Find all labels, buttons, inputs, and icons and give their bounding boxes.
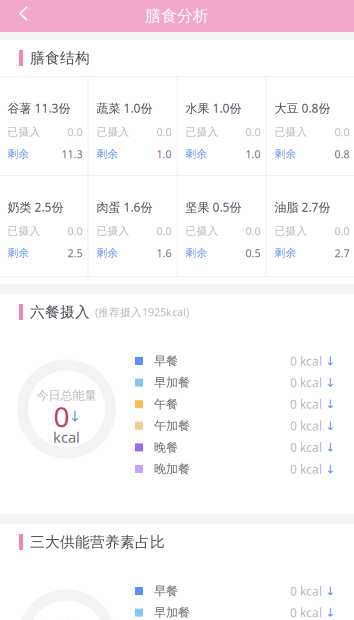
staticText: 奶类 2.5份 xyxy=(7,199,63,215)
staticText: 剩余 xyxy=(185,147,207,160)
staticText: 已摄入 xyxy=(274,125,307,138)
staticText: 已摄入 xyxy=(185,224,218,237)
staticText: 剩余 xyxy=(7,147,29,160)
staticText: 0 kcal xyxy=(290,418,322,434)
staticText: 0 kcal xyxy=(290,396,322,412)
staticText: 三大供能营养素占比 xyxy=(30,533,165,551)
button[interactable]: 返回 xyxy=(0,0,32,32)
staticText: 1.0 xyxy=(156,147,171,161)
staticText: 晚餐 xyxy=(154,440,178,455)
staticText: ↓ xyxy=(325,462,335,476)
staticText: 膳食分析 xyxy=(145,6,209,26)
staticText: 坚果 0.5份 xyxy=(185,199,241,215)
staticText: 0 kcal xyxy=(290,605,322,620)
staticText: 剩余 xyxy=(274,246,296,259)
staticText: ↓ xyxy=(68,408,80,425)
staticText: 早餐 xyxy=(154,584,178,598)
staticText: 剩余 xyxy=(7,246,29,259)
staticText: ↓ xyxy=(325,376,335,389)
staticText: 1.6 xyxy=(156,246,171,260)
staticText: 0.0 xyxy=(245,125,260,139)
staticText: 1.0 xyxy=(245,147,260,161)
staticText: 0 xyxy=(53,398,69,435)
staticText: 0 kcal xyxy=(290,353,322,369)
staticText: (推荐摄入1925kcal) xyxy=(95,305,189,319)
staticText: 0 kcal xyxy=(290,439,322,455)
staticText: 已摄入 xyxy=(274,224,307,237)
staticText: 0.0 xyxy=(334,125,349,139)
staticText: 11.3 xyxy=(61,147,82,161)
staticText: 肉蛋 1.6份 xyxy=(96,199,152,215)
staticText: 0.0 xyxy=(156,224,171,238)
staticText: 今日总能量 xyxy=(36,388,96,403)
staticText: 已摄入 xyxy=(96,125,129,138)
staticText: 已摄入 xyxy=(185,125,218,138)
staticText: 0.0 xyxy=(156,125,171,139)
staticText: ↓ xyxy=(325,397,335,411)
staticText: 0.0 xyxy=(67,125,82,139)
staticText: 0.0 xyxy=(334,224,349,238)
staticText: ↓ xyxy=(325,606,335,619)
staticText: 已摄入 xyxy=(7,125,40,138)
staticText: 剩余 xyxy=(96,246,118,259)
staticText: ↓ xyxy=(325,354,335,368)
staticText: 午餐 xyxy=(154,397,178,411)
staticText: 0 kcal xyxy=(290,583,322,599)
staticText: 0 kcal xyxy=(290,461,322,477)
staticText: ↓ xyxy=(325,441,335,454)
staticText: kcal xyxy=(53,427,80,447)
staticText: 0.0 xyxy=(67,224,82,238)
staticText: 午加餐 xyxy=(154,418,190,433)
staticText: 0.5 xyxy=(245,246,260,260)
staticText: 0 kcal xyxy=(290,375,322,390)
staticText: 早加餐 xyxy=(154,605,190,620)
staticText: 晚加餐 xyxy=(154,462,190,476)
staticText: 0.0 xyxy=(245,224,260,238)
staticText: ↓ xyxy=(325,419,335,433)
staticText: 早加餐 xyxy=(154,375,190,390)
staticText: 大豆 0.8份 xyxy=(274,100,330,116)
staticText: 剩余 xyxy=(274,147,296,160)
staticText: ↓ xyxy=(325,584,335,598)
staticText: 油脂 2.7份 xyxy=(274,199,330,215)
staticText: 谷薯 11.3份 xyxy=(7,100,70,116)
staticText: 已摄入 xyxy=(7,224,40,237)
staticText: 0.8 xyxy=(334,147,349,161)
staticText: 2.7 xyxy=(334,246,349,260)
staticText: 2.5 xyxy=(67,246,82,260)
staticText: 剩余 xyxy=(96,147,118,160)
staticText: 六餐摄入 xyxy=(30,303,90,321)
staticText: 蔬菜 1.0份 xyxy=(96,100,152,116)
staticText: 已摄入 xyxy=(96,224,129,237)
staticText: 早餐 xyxy=(154,354,178,368)
staticText: 剩余 xyxy=(185,246,207,259)
staticText: 水果 1.0份 xyxy=(185,100,241,116)
staticText: 膳食结构 xyxy=(30,49,90,67)
